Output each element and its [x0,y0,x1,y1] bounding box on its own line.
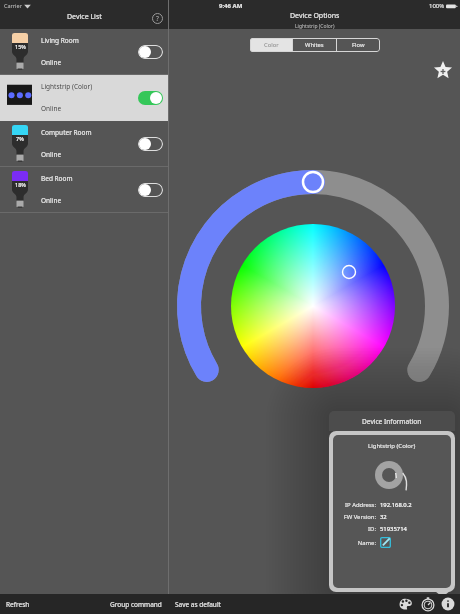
staticText: Device List [67,12,102,22]
staticText: IP Address: [333,501,376,509]
staticText: Lightstrip (Color) [41,82,93,91]
staticText: 192.168.0.2 [380,501,412,509]
staticText: 7% [16,135,24,142]
staticText: Device Information [362,417,422,426]
staticText: 9:46 AM [219,2,243,10]
staticText: FW Version: [333,513,376,521]
button[interactable]: Add favourite [432,59,454,81]
staticText: Device Options [290,11,340,21]
staticText: 32 [380,513,387,521]
button[interactable] [138,183,163,197]
staticText: ID: [333,525,376,533]
staticText: Save as default [175,600,221,609]
staticText: Computer Room [41,128,92,137]
button[interactable] [138,137,163,151]
button[interactable] [138,91,163,105]
button[interactable]: 18% [0,167,168,213]
staticText: Whites [305,41,324,49]
staticText: Bed Room [41,174,73,183]
staticText: 100% [429,2,445,10]
button[interactable]: Color [250,38,292,52]
staticText: Living Room [41,36,79,45]
button[interactable]: Refresh [6,600,30,609]
staticText: ? [156,14,159,23]
button[interactable]: 7% [0,121,168,167]
button[interactable]: Group command [110,600,162,609]
button[interactable]: Help [150,11,164,25]
staticText: Online [41,150,62,159]
staticText: Online [41,104,62,113]
staticText: 18% [15,181,26,188]
button[interactable]: Lightstrip (Color) [0,75,168,121]
button[interactable]: Save as default [175,600,221,609]
staticText: Online [41,196,62,205]
staticText: Color [264,41,279,49]
button[interactable]: 15% [0,29,168,75]
staticText: Lightstrip (Color) [295,23,335,30]
staticText: 51935714 [380,525,407,533]
staticText: Refresh [6,600,30,609]
staticText: Online [41,58,62,67]
staticText: Flow [352,41,365,49]
button[interactable]: Flow [337,38,380,52]
staticText: 15% [15,43,26,50]
staticText: Name: [333,539,376,547]
staticText: Carrier [4,2,22,9]
button[interactable]: Palette [397,595,415,613]
button[interactable]: Info [439,595,457,613]
staticText: Group command [110,600,162,609]
staticText: Lightstrip (Color) [368,442,416,450]
button[interactable]: Edit name [380,537,391,548]
button[interactable] [138,45,163,59]
button[interactable]: Whites [293,38,336,52]
button[interactable]: Timer [419,595,437,613]
